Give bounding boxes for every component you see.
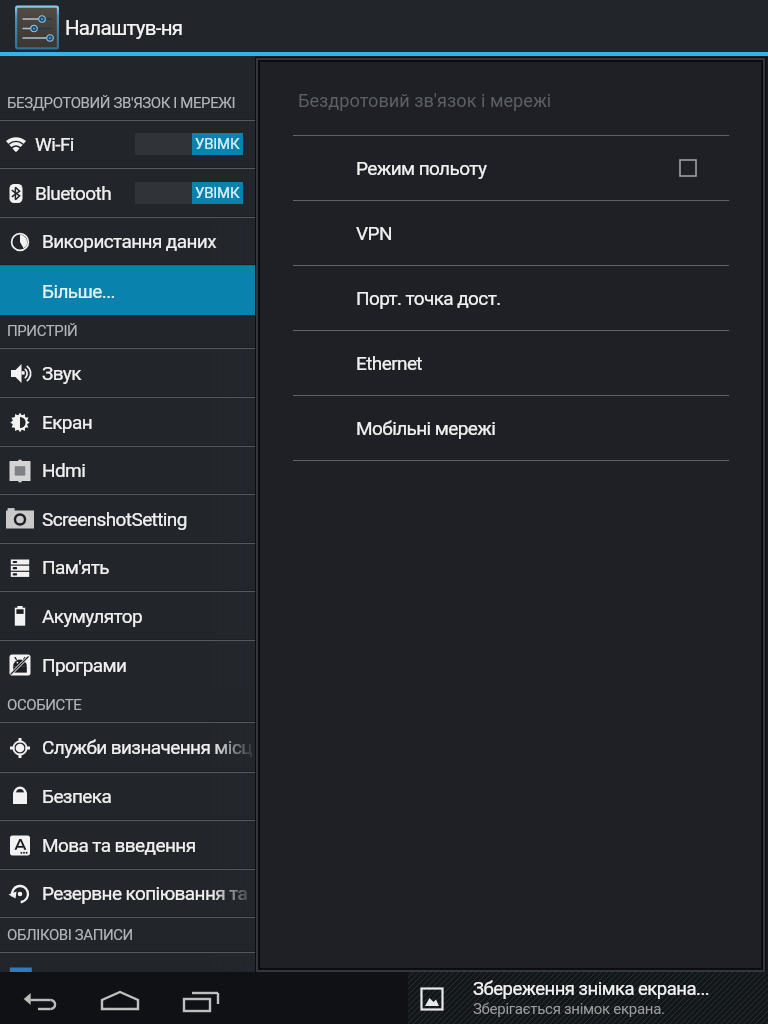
staticText: ScreenshotSetting — [42, 508, 187, 530]
button[interactable]: Bluetooth — [0, 169, 256, 216]
button[interactable]: Hdmi — [0, 447, 256, 493]
button[interactable]: VPN — [260, 201, 761, 265]
staticText: Мобільні мережі — [356, 417, 496, 439]
button[interactable]: Back — [16, 974, 64, 1022]
staticText: VPN — [356, 222, 392, 244]
staticText: Hdmi — [42, 459, 86, 481]
staticText: Мова та введення — [42, 834, 196, 856]
button[interactable]: Резервне копіювання та скидання — [0, 870, 256, 916]
staticText: Wi-Fi — [35, 133, 74, 155]
button[interactable]: Звук — [0, 349, 256, 396]
other: Airplane mode — [680, 160, 696, 176]
staticText: Більше... — [42, 280, 115, 302]
button[interactable]: Home — [96, 974, 144, 1022]
button[interactable]: Використання даних — [0, 218, 256, 264]
button[interactable]: Wi-Fi — [0, 121, 256, 167]
staticText: УВІМК — [195, 135, 240, 153]
staticText: Звук — [42, 362, 81, 384]
button[interactable]: Режим польоту — [260, 136, 761, 200]
button[interactable]: Програми — [0, 641, 256, 689]
staticText: БЕЗДРОТОВИЙ ЗВ'ЯЗОК І МЕРЕЖІ — [7, 94, 236, 112]
button[interactable]: Акумулятор — [0, 592, 256, 639]
button[interactable]: Пам'ять — [0, 544, 256, 590]
staticText: Пам'ять — [42, 556, 109, 578]
staticText: Bluetooth — [35, 182, 111, 204]
button[interactable]: УВІМК — [135, 182, 243, 204]
button[interactable]: Більше... — [0, 266, 256, 315]
button[interactable]: Google — [0, 953, 256, 972]
staticText: Режим польоту — [356, 157, 487, 179]
staticText: Безпека — [42, 785, 112, 807]
button[interactable]: Settings app icon — [13, 2, 61, 50]
staticText: Програми — [42, 654, 127, 676]
staticText: Ethernet — [356, 352, 422, 374]
button[interactable]: Екран — [0, 398, 256, 445]
staticText: Резервне копіювання та скидання — [42, 882, 252, 904]
staticText: ПРИСТРІЙ — [7, 322, 78, 340]
staticText: Акумулятор — [42, 605, 143, 627]
button[interactable]: Recent apps — [177, 974, 225, 1022]
staticText: Збереження знімка екрана... — [473, 978, 710, 1000]
staticText: Служби визначення місця — [42, 736, 252, 758]
staticText: ОБЛІКОВІ ЗАПИСИ — [7, 926, 133, 944]
button[interactable]: УВІМК — [135, 133, 243, 155]
staticText: Порт. точка дост. — [356, 287, 501, 309]
button[interactable]: Мова та введення — [0, 821, 256, 868]
button[interactable]: Ethernet — [260, 331, 761, 395]
staticText: Використання даних — [42, 230, 217, 252]
button[interactable]: Служби визначення місця — [0, 723, 256, 771]
staticText: Налаштув-ня — [65, 16, 183, 40]
button[interactable]: Порт. точка дост. — [260, 266, 761, 330]
button[interactable]: Мобільні мережі — [260, 396, 761, 460]
staticText: Зберігається знімок екрана. — [473, 1000, 665, 1018]
staticText: УВІМК — [195, 184, 240, 202]
staticText: Екран — [42, 411, 93, 433]
staticText: Бездротовий зв'язок і мережі — [298, 90, 552, 111]
button[interactable]: ScreenshotSetting — [0, 495, 256, 542]
button[interactable]: Безпека — [0, 773, 256, 819]
staticText: ОСОБИСТЕ — [7, 696, 82, 714]
button[interactable] — [408, 972, 768, 1024]
